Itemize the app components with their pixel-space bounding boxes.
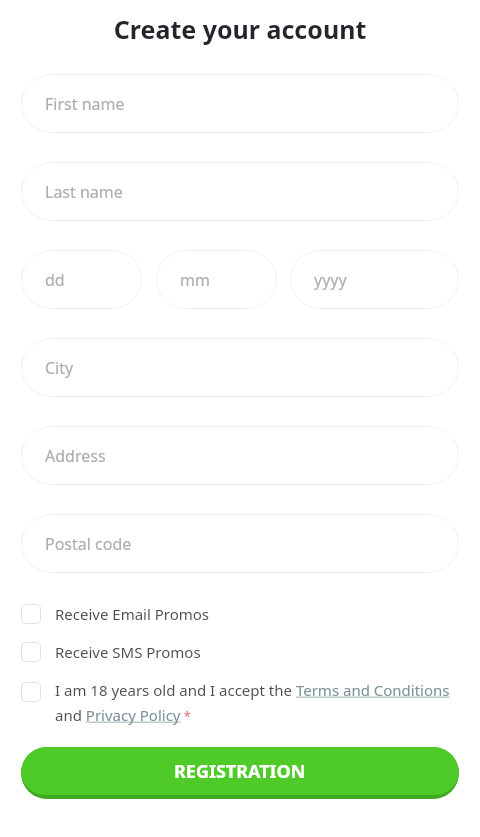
- staticText: Create your account: [0, 12, 480, 46]
- button[interactable]: Last name: [21, 162, 459, 221]
- staticText: dd: [45, 269, 65, 291]
- button[interactable]: yyyy: [290, 250, 459, 309]
- button[interactable]: dd: [21, 250, 142, 309]
- staticText: I am 18 years old and I accept the Terms…: [55, 680, 459, 725]
- staticText: mm: [180, 269, 210, 291]
- button[interactable]: Postal code: [21, 514, 459, 573]
- staticText: City: [45, 357, 74, 379]
- staticText: Postal code: [45, 533, 132, 555]
- staticText: Receive Email Promos: [55, 604, 210, 624]
- button[interactable]: I am 18 years old and I accept the Terms…: [21, 671, 459, 725]
- button[interactable]: Address: [21, 426, 459, 485]
- button[interactable]: First name: [21, 74, 459, 133]
- button[interactable]: City: [21, 338, 459, 397]
- staticText: Last name: [45, 181, 123, 203]
- button[interactable]: REGISTRATION: [21, 747, 459, 799]
- staticText: Receive SMS Promos: [55, 642, 201, 662]
- staticText: Address: [45, 445, 106, 467]
- button[interactable]: Receive Email Promos: [21, 595, 459, 633]
- button[interactable]: Receive SMS Promos: [21, 633, 459, 671]
- staticText: yyyy: [314, 269, 347, 291]
- staticText: REGISTRATION: [174, 759, 306, 784]
- button[interactable]: mm: [156, 250, 277, 309]
- staticText: First name: [45, 93, 125, 115]
